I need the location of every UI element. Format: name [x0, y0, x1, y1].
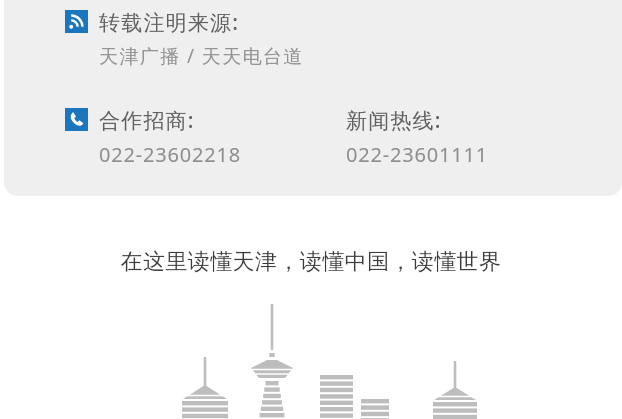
staticText: 新闻热线:: [346, 106, 442, 135]
button[interactable]: Phone: [65, 106, 488, 168]
staticText: 天津广播 / 天天电台道: [99, 43, 304, 69]
staticText: 022-23601111: [346, 141, 488, 168]
staticText: 022-23602218: [99, 141, 241, 168]
button[interactable]: RSS source: [65, 8, 304, 69]
button[interactable]: 在这里读懂天津，读懂中国，读懂世界: [0, 248, 622, 419]
other: RSS source: [65, 10, 88, 33]
staticText: 合作招商:: [99, 106, 195, 135]
staticText: 转载注明来源:: [99, 8, 240, 37]
other: Phone: [65, 108, 88, 131]
